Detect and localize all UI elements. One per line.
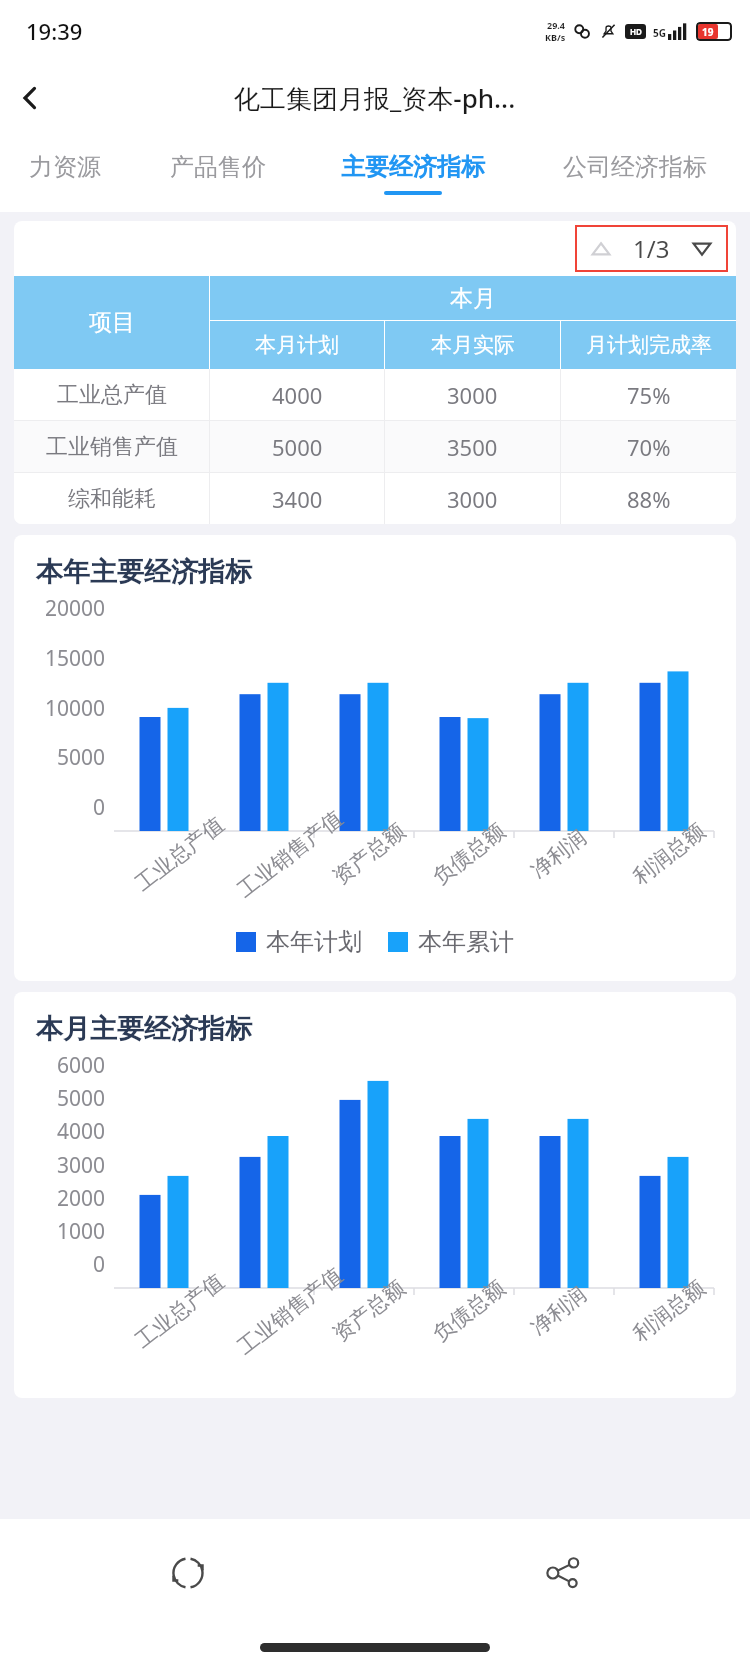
staticText: 6000 <box>57 1051 106 1080</box>
staticText: 力资源 <box>29 152 101 182</box>
staticText: 月计划完成率 <box>586 332 712 358</box>
staticText: HD <box>630 26 642 37</box>
staticText: 本年主要经济指标 <box>36 555 252 589</box>
staticText: 工业销售产值 <box>46 433 178 461</box>
staticText: 项目 <box>89 308 135 337</box>
staticText: 负债总额 <box>428 818 510 890</box>
other: Next page <box>690 237 714 261</box>
staticText: 主要经济指标 <box>341 152 485 182</box>
staticText: 化工集团月报_资本-ph... <box>234 80 516 116</box>
staticText: 75% <box>627 380 671 410</box>
staticText: 29.4 <box>547 19 565 31</box>
staticText: 3400 <box>272 484 323 514</box>
staticText: 2000 <box>57 1184 106 1213</box>
staticText: 资产总额 <box>328 818 410 890</box>
staticText: 88% <box>627 484 671 514</box>
staticText: 工业总产值 <box>130 811 229 896</box>
staticText: 资产总额 <box>328 1275 410 1347</box>
button[interactable]: 工业销售产值 <box>14 421 736 472</box>
staticText: 5000 <box>272 432 323 462</box>
button[interactable]: 产品售价 <box>130 134 305 212</box>
staticText: 5000 <box>57 1084 106 1113</box>
button[interactable]: Back <box>0 68 60 128</box>
staticText: 工业总产值 <box>130 1268 229 1353</box>
staticText: 1000 <box>57 1217 106 1246</box>
staticText: 70% <box>627 432 671 462</box>
staticText: 5000 <box>57 743 106 772</box>
staticText: KB/s <box>545 31 566 43</box>
staticText: 本月计划 <box>255 332 339 358</box>
staticText: 工业销售产值 <box>232 805 348 903</box>
staticText: 4000 <box>272 380 323 410</box>
staticText: 20000 <box>45 594 106 623</box>
button[interactable]: 综和能耗 <box>14 473 736 524</box>
staticText: 本年累计 <box>418 927 514 957</box>
staticText: 3500 <box>447 432 498 462</box>
button[interactable]: 力资源 <box>0 134 130 212</box>
other: Previous page <box>589 237 613 261</box>
staticText: 3000 <box>447 380 498 410</box>
staticText: 本月主要经济指标 <box>36 1012 252 1046</box>
staticText: 工业销售产值 <box>232 1262 348 1360</box>
button[interactable]: 公司经济指标 <box>520 134 750 212</box>
staticText: 净利润 <box>526 1281 591 1341</box>
staticText: 本年计划 <box>266 927 362 957</box>
staticText: 本月 <box>450 284 496 313</box>
staticText: 公司经济指标 <box>563 152 707 182</box>
staticText: 净利润 <box>526 824 591 884</box>
staticText: 5G <box>653 26 666 40</box>
staticText: 利润总额 <box>628 818 710 890</box>
staticText: 0 <box>93 1250 106 1279</box>
staticText: 产品售价 <box>170 152 266 182</box>
staticText: 负债总额 <box>428 1275 510 1347</box>
button[interactable]: 工业总产值 <box>14 369 736 420</box>
button[interactable]: Share <box>375 1519 750 1627</box>
staticText: 10000 <box>45 694 106 723</box>
staticText: 19:39 <box>26 16 83 46</box>
staticText: 利润总额 <box>628 1275 710 1347</box>
staticText: 0 <box>93 793 106 822</box>
staticText: 3000 <box>447 484 498 514</box>
staticText: 15000 <box>45 644 106 673</box>
staticText: 综和能耗 <box>68 485 156 513</box>
staticText: 工业总产值 <box>57 381 167 409</box>
staticText: 本月实际 <box>431 332 515 358</box>
button[interactable]: Refresh <box>0 1519 375 1627</box>
button[interactable]: Previous page <box>589 232 714 265</box>
button[interactable]: 主要经济指标 <box>305 134 520 212</box>
staticText: 19 <box>702 25 714 39</box>
staticText: 3000 <box>57 1151 106 1180</box>
staticText: 4000 <box>57 1117 106 1146</box>
staticText: 1/3 <box>633 232 670 265</box>
